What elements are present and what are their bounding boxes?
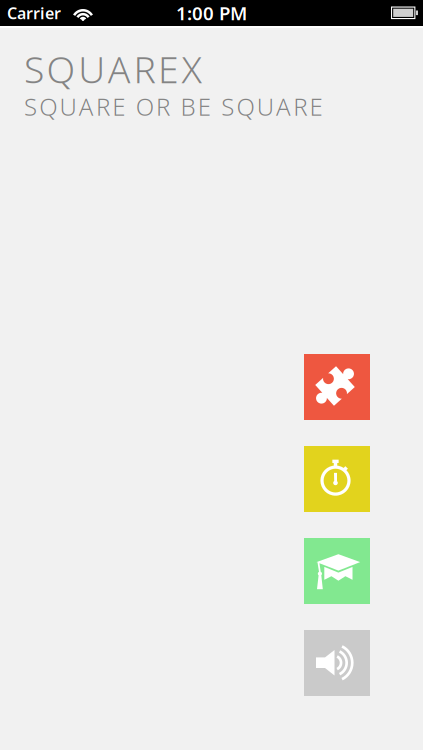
staticText: SQUAREX (24, 44, 202, 94)
staticText: SQUARE OR BE SQUARE (24, 91, 322, 122)
staticText: 1:00 PM (176, 1, 247, 25)
button[interactable]: Timed challenge (304, 446, 370, 512)
staticText: Carrier (7, 2, 61, 24)
button[interactable]: Sound (304, 630, 370, 696)
button[interactable]: Learn (304, 538, 370, 604)
button[interactable]: Puzzles (304, 354, 370, 420)
